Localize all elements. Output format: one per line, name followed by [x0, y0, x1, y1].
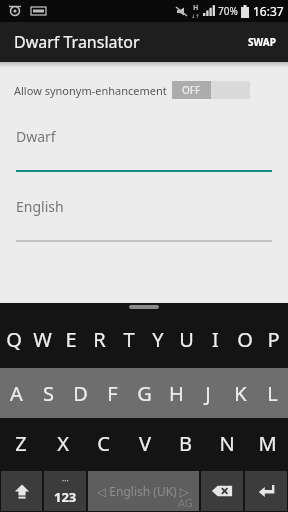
- button[interactable]: E: [56, 310, 85, 368]
- staticText: D: [73, 380, 88, 407]
- button[interactable]: Dwarf: [0, 127, 288, 173]
- staticText: V: [139, 430, 151, 457]
- staticText: 16:37: [253, 3, 284, 19]
- button[interactable]: M: [247, 418, 288, 468]
- button[interactable]: Y: [143, 310, 172, 368]
- button[interactable]: English: [0, 197, 288, 243]
- button[interactable]: L: [256, 368, 288, 418]
- staticText: B: [179, 430, 192, 457]
- staticText: Q: [6, 326, 22, 353]
- button[interactable]: N: [206, 418, 247, 468]
- staticText: S: [43, 380, 54, 407]
- button[interactable]: B: [165, 418, 206, 468]
- staticText: L: [267, 380, 278, 407]
- staticText: N: [219, 430, 235, 457]
- button[interactable]: G: [128, 368, 160, 418]
- button[interactable]: J: [192, 368, 224, 418]
- staticText: U: [179, 326, 194, 353]
- button[interactable]: Enter: [245, 471, 287, 511]
- button[interactable]: K: [224, 368, 256, 418]
- button[interactable]: SWAP: [236, 22, 288, 62]
- staticText: OFF: [182, 83, 201, 97]
- staticText: W: [33, 326, 52, 353]
- staticText: C: [97, 430, 110, 457]
- button[interactable]: T: [114, 310, 143, 368]
- button[interactable]: Allow synonym-enhancement: [0, 81, 288, 99]
- staticText: G: [137, 380, 152, 407]
- button[interactable]: Space, English (UK): [88, 471, 199, 511]
- button[interactable]: W: [28, 310, 56, 368]
- button[interactable]: Backspace: [201, 471, 243, 511]
- staticText: T: [123, 326, 135, 353]
- staticText: Z: [15, 430, 27, 457]
- staticText: ↓↑: [191, 13, 200, 19]
- button[interactable]: D: [64, 368, 96, 418]
- staticText: Dwarf Translator: [14, 31, 140, 53]
- staticText: ◁ English (UK) ▷: [97, 483, 190, 499]
- button[interactable]: P: [259, 310, 288, 368]
- button[interactable]: X: [42, 418, 83, 468]
- button[interactable]: C: [83, 418, 124, 468]
- button[interactable]: Q: [0, 310, 28, 368]
- staticText: J: [205, 380, 211, 407]
- staticText: Y: [152, 326, 164, 353]
- staticText: F: [107, 380, 118, 407]
- staticText: Dwarf: [16, 127, 56, 146]
- staticText: AG: [178, 495, 193, 510]
- staticText: 70%: [218, 4, 238, 18]
- button[interactable]: V: [124, 418, 165, 468]
- button[interactable]: •••: [44, 471, 86, 511]
- staticText: I: [212, 326, 219, 353]
- staticText: SWAP: [248, 35, 276, 49]
- staticText: English: [16, 197, 64, 216]
- staticText: •••: [62, 477, 69, 485]
- button[interactable]: O: [230, 310, 259, 368]
- staticText: 123: [54, 488, 77, 506]
- button[interactable]: S: [32, 368, 64, 418]
- staticText: K: [234, 380, 247, 407]
- staticText: H: [169, 380, 184, 407]
- button[interactable]: H: [160, 368, 192, 418]
- button[interactable]: U: [172, 310, 201, 368]
- staticText: H: [193, 3, 199, 13]
- staticText: R: [93, 326, 106, 353]
- staticText: O: [237, 326, 253, 353]
- button[interactable]: R: [85, 310, 114, 368]
- staticText: X: [57, 430, 69, 457]
- staticText: Allow synonym-enhancement: [14, 83, 167, 98]
- staticText: E: [65, 326, 77, 353]
- button[interactable]: F: [96, 368, 128, 418]
- button[interactable]: A: [0, 368, 32, 418]
- button[interactable]: I: [201, 310, 230, 368]
- staticText: A: [10, 380, 23, 407]
- button[interactable]: Shift: [1, 471, 42, 511]
- staticText: M: [258, 430, 277, 457]
- staticText: P: [267, 326, 280, 353]
- button[interactable]: Z: [0, 418, 42, 468]
